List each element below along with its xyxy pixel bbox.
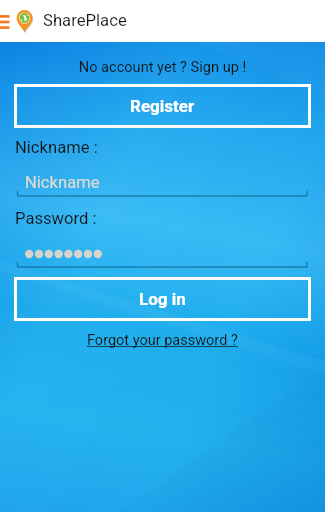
- staticText: No account yet ? Sign up !: [0, 58, 325, 75]
- staticText: Register: [130, 96, 195, 116]
- staticText: Log in: [139, 289, 186, 309]
- staticText: Password :: [15, 209, 97, 228]
- button[interactable]: Nickname: [25, 161, 307, 203]
- staticText: SharePlace: [43, 11, 127, 31]
- button[interactable]: Register: [14, 84, 311, 128]
- button[interactable]: Log in: [14, 277, 311, 321]
- staticText: Nickname: [25, 173, 100, 192]
- button[interactable]: Forgot your password ?: [87, 332, 238, 349]
- staticText: Nickname :: [15, 138, 98, 157]
- button[interactable]: [25, 233, 307, 275]
- button[interactable]: Open navigation menu: [0, 0, 13, 42]
